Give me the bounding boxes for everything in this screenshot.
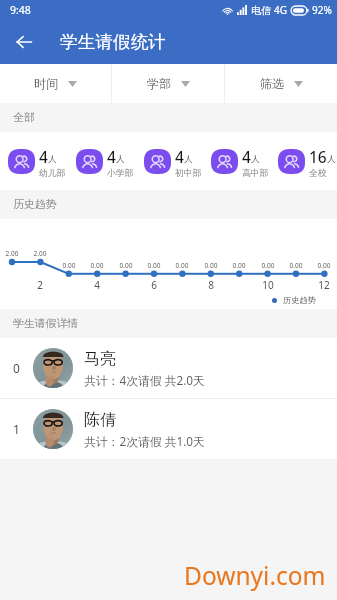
- button[interactable]: 时间: [0, 64, 111, 103]
- staticText: 0.00: [143, 261, 165, 270]
- staticText: 学生请假统计: [60, 31, 166, 53]
- staticText: 10: [257, 278, 279, 292]
- staticText: 6: [143, 278, 165, 292]
- staticText: 0.00: [257, 261, 279, 270]
- button[interactable]: 4: [0, 132, 68, 190]
- staticText: 全校: [309, 168, 327, 179]
- staticText: 学部: [147, 76, 172, 91]
- staticText: 0.00: [228, 261, 250, 270]
- staticText: 高中部: [242, 168, 269, 179]
- staticText: 0: [13, 360, 20, 376]
- staticText: 幼儿部: [39, 168, 66, 179]
- staticText: 0.00: [285, 261, 307, 270]
- button[interactable]: 0: [0, 338, 337, 398]
- staticText: 0.00: [58, 261, 80, 270]
- staticText: 共计：2次请假 共1.0天: [84, 433, 205, 449]
- staticText: 0.00: [200, 261, 222, 270]
- staticText: 9:48: [10, 3, 31, 17]
- button[interactable]: 筛选: [225, 64, 337, 103]
- button[interactable]: 学部: [112, 64, 224, 103]
- staticText: 16: [309, 146, 327, 167]
- staticText: 2: [29, 278, 51, 292]
- staticText: 陈倩: [84, 410, 116, 430]
- staticText: 时间: [34, 76, 59, 91]
- staticText: 电信: [251, 4, 271, 17]
- staticText: 4: [107, 146, 116, 167]
- staticText: Downyi.com: [184, 559, 326, 592]
- staticText: 0.00: [115, 261, 137, 270]
- staticText: 1: [13, 421, 20, 437]
- staticText: 共计：4次请假 共2.0天: [84, 372, 205, 388]
- button[interactable]: 16: [270, 132, 337, 190]
- staticText: 2.00: [29, 249, 51, 258]
- button[interactable]: 1: [0, 399, 337, 459]
- staticText: 历史趋势: [283, 295, 316, 305]
- staticText: 12: [313, 278, 335, 292]
- staticText: 4: [86, 278, 108, 292]
- staticText: 2.00: [1, 249, 23, 258]
- staticText: 4G: [274, 3, 287, 17]
- button[interactable]: 4: [68, 132, 136, 190]
- staticText: 人: [116, 154, 125, 165]
- staticText: 筛选: [260, 76, 285, 91]
- staticText: 92%: [312, 3, 332, 17]
- staticText: 历史趋势: [13, 198, 57, 212]
- staticText: 人: [184, 154, 193, 165]
- button[interactable]: 4: [203, 132, 270, 190]
- staticText: 0.00: [171, 261, 193, 270]
- staticText: 人: [48, 154, 57, 165]
- staticText: 8: [200, 278, 222, 292]
- staticText: 全部: [13, 111, 35, 125]
- staticText: 0.00: [86, 261, 108, 270]
- staticText: 学生请假详情: [13, 317, 79, 331]
- staticText: 小学部: [107, 168, 134, 179]
- staticText: 初中部: [175, 168, 202, 179]
- staticText: 人: [327, 154, 336, 165]
- staticText: 人: [251, 154, 260, 165]
- button[interactable]: 返回: [10, 28, 38, 56]
- button[interactable]: 4: [136, 132, 203, 190]
- staticText: 马亮: [84, 349, 116, 369]
- staticText: 4: [175, 146, 184, 167]
- staticText: 4: [39, 146, 48, 167]
- staticText: 4: [242, 146, 251, 167]
- staticText: 0.00: [313, 261, 335, 270]
